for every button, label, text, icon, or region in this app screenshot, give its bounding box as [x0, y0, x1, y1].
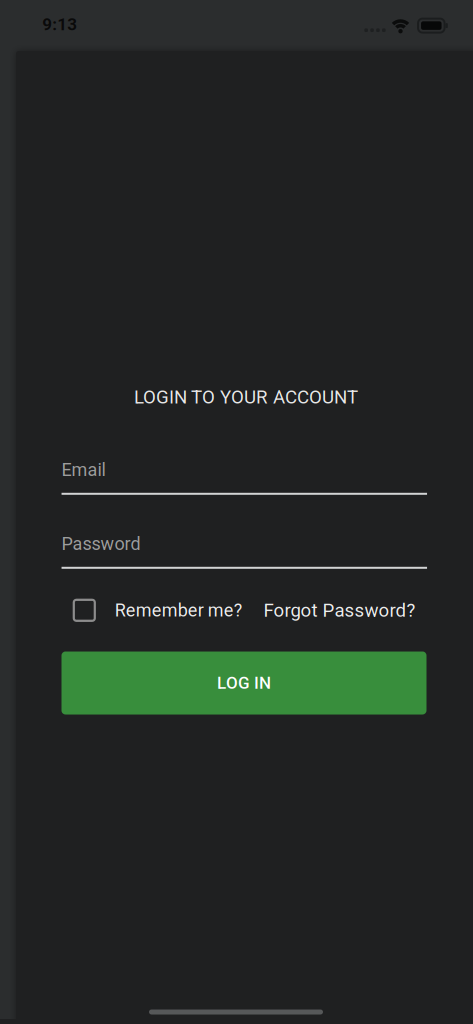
button[interactable]: Password [62, 533, 427, 569]
button[interactable]: Remember me? [74, 600, 243, 621]
staticText: Email [62, 459, 106, 480]
button[interactable]: Email [62, 459, 427, 495]
staticText: 9:13 [42, 14, 77, 34]
staticText: Forgot Password? [264, 599, 416, 621]
staticText: Password [62, 533, 141, 554]
staticText: LOGIN TO YOUR ACCOUNT [134, 386, 358, 408]
button[interactable]: Forgot Password? [264, 599, 416, 621]
button[interactable]: LOG IN [61, 651, 426, 714]
staticText: Remember me? [115, 600, 243, 621]
staticText: LOG IN [217, 673, 271, 693]
